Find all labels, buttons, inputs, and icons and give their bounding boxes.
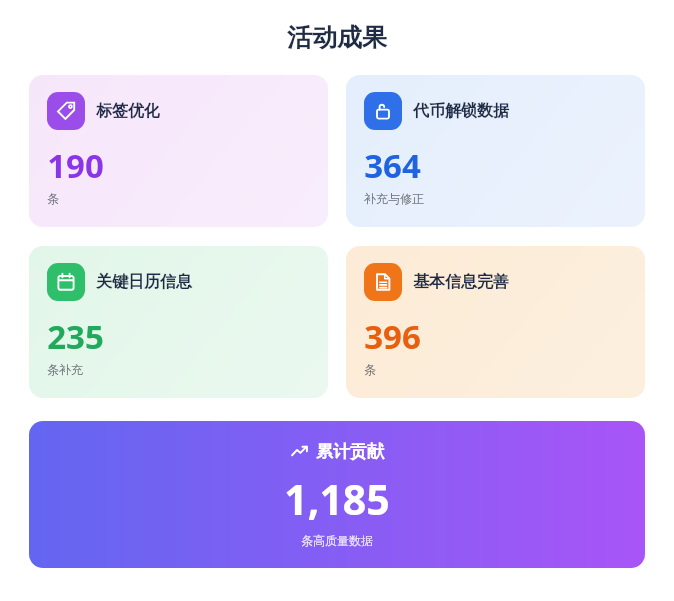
button[interactable]: 标签优化 — [29, 75, 328, 227]
staticText: 活动成果 — [287, 22, 387, 53]
staticText: 条 — [47, 191, 59, 206]
staticText: 补充与修正 — [364, 191, 424, 206]
button[interactable]: 基本信息完善 — [346, 246, 645, 398]
staticText: 关键日历信息 — [96, 272, 192, 292]
staticText: 条补充 — [47, 362, 83, 377]
staticText: 标签优化 — [96, 101, 160, 121]
staticText: 190 — [47, 143, 104, 188]
staticText: 235 — [47, 314, 104, 359]
staticText: 条 — [364, 362, 376, 377]
button[interactable]: Trending up — [29, 421, 645, 568]
staticText: 累计贡献 — [316, 441, 384, 462]
staticText: 基本信息完善 — [413, 272, 509, 292]
staticText: 代币解锁数据 — [413, 101, 509, 121]
button[interactable]: 关键日历信息 — [29, 246, 328, 398]
staticText: 364 — [364, 143, 421, 188]
staticText: 1,185 — [284, 471, 390, 527]
staticText: 396 — [364, 314, 421, 359]
other: Trending up — [290, 442, 309, 461]
staticText: 条高质量数据 — [301, 533, 373, 548]
button[interactable]: 代币解锁数据 — [346, 75, 645, 227]
